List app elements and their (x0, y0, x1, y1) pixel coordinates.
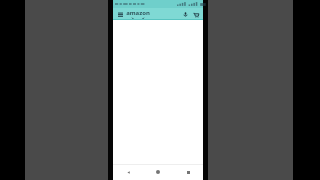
button[interactable]: Amazon home (126, 9, 150, 19)
staticText: amazon (126, 9, 150, 17)
button[interactable]: Home (153, 167, 163, 177)
button[interactable]: Recent apps (183, 167, 193, 177)
button[interactable]: Shopping cart (191, 10, 200, 19)
button[interactable]: Voice search (181, 10, 189, 18)
button[interactable]: Back (123, 167, 133, 177)
button[interactable]: Open navigation menu (116, 10, 124, 18)
